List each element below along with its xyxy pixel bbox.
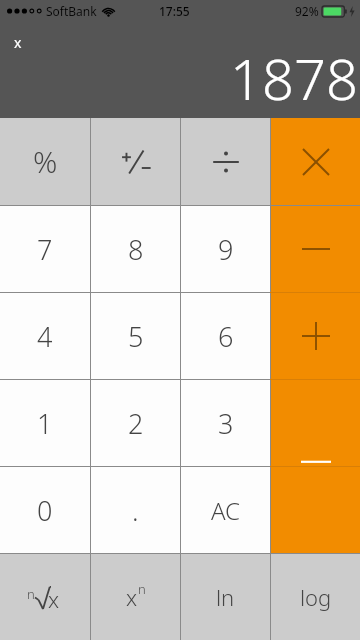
button[interactable]: 5 <box>91 293 180 379</box>
button[interactable]: 1 <box>0 380 90 466</box>
staticText: x <box>48 584 60 614</box>
staticText: n <box>138 580 146 598</box>
staticText: 2 <box>128 405 144 442</box>
button[interactable]: log <box>271 554 360 640</box>
staticText: 92% <box>295 3 319 19</box>
staticText: 6 <box>218 318 234 355</box>
staticText: . <box>132 492 139 529</box>
staticText: 17:55 <box>159 3 190 19</box>
staticText: 8 <box>128 231 144 268</box>
button[interactable]: Plus <box>271 293 360 379</box>
button[interactable]: Minus <box>271 206 360 292</box>
button[interactable]: 0 <box>0 467 90 553</box>
button[interactable]: 2 <box>91 380 180 466</box>
button[interactable]: AC <box>181 467 270 553</box>
button[interactable]: 4 <box>0 293 90 379</box>
staticText: 1878 <box>230 40 358 116</box>
button[interactable]: 6 <box>181 293 270 379</box>
staticText: 5 <box>128 318 144 355</box>
staticText: x <box>126 582 138 612</box>
button[interactable]: x to the power n <box>91 554 180 640</box>
staticText: 4 <box>37 318 53 355</box>
staticText: 3 <box>218 405 234 442</box>
button[interactable]: 8 <box>91 206 180 292</box>
staticText: ln <box>216 582 235 612</box>
button[interactable]: Plus minus <box>91 118 180 205</box>
staticText: n <box>27 585 35 603</box>
button[interactable]: ln <box>181 554 270 640</box>
button[interactable]: . <box>91 467 180 553</box>
staticText: 7 <box>37 231 53 268</box>
staticText: x <box>14 33 22 52</box>
button[interactable]: nth root of x <box>0 554 90 640</box>
button[interactable]: 3 <box>181 380 270 466</box>
button[interactable]: Divide <box>181 118 270 205</box>
staticText: 9 <box>218 231 234 268</box>
staticText: SoftBank <box>46 3 97 19</box>
staticText: % <box>33 141 58 182</box>
button[interactable]: 9 <box>181 206 270 292</box>
button[interactable]: Close <box>4 28 32 56</box>
staticText: 0 <box>37 492 53 529</box>
button[interactable]: Equals <box>271 380 360 466</box>
button[interactable]: Percent <box>0 118 90 205</box>
staticText: AC <box>211 494 241 527</box>
staticText: log <box>300 582 332 612</box>
button[interactable]: 7 <box>0 206 90 292</box>
staticText: 1 <box>37 405 53 442</box>
button[interactable]: Multiply <box>271 118 360 205</box>
